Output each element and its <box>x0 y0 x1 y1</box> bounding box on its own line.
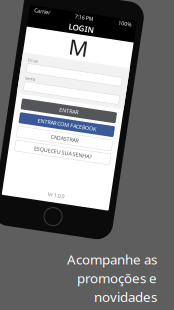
staticText: M <box>59 32 78 61</box>
button[interactable]: ESQUECEU SUA SENHA? <box>20 147 116 158</box>
staticText: LOGIN <box>56 22 81 32</box>
staticText: novidades <box>94 288 157 306</box>
button[interactable]: ENTRAR COM FACEBOOK <box>20 119 116 130</box>
staticText: promoções e <box>77 269 157 287</box>
staticText: ENTRAR COM FACEBOOK <box>39 121 98 128</box>
staticText: ENTRAR <box>59 107 78 114</box>
staticText: Vr 1.0.0 <box>60 193 77 200</box>
button[interactable]: ENTRAR <box>20 105 116 116</box>
staticText: CADASTRAR <box>54 135 82 142</box>
staticText: 7:16 PM <box>60 13 79 20</box>
button[interactable]: CADASTRAR <box>20 133 116 144</box>
staticText: Senha <box>20 82 30 87</box>
staticText: Carrier <box>19 13 35 20</box>
staticText: 100% <box>104 13 117 20</box>
staticText: Acompanhe as <box>67 250 157 268</box>
staticText: Email <box>20 64 30 69</box>
staticText: ESQUECEU SUA SENHA? <box>39 149 97 156</box>
